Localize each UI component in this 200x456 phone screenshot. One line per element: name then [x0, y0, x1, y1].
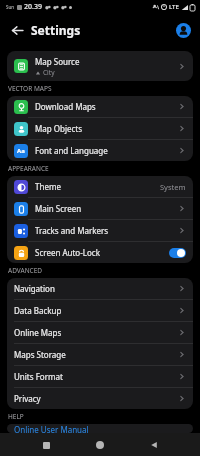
staticText: Font and Language	[35, 145, 108, 156]
button[interactable]: Privacy	[7, 388, 193, 409]
staticText: Online User Manual	[14, 424, 89, 433]
button[interactable]: Tracks and Markers	[7, 220, 193, 242]
button[interactable]: Recents	[36, 435, 56, 455]
button[interactable]: Map Objects	[7, 118, 193, 140]
staticText: Map Objects	[35, 123, 83, 134]
staticText: Navigation	[14, 283, 55, 294]
button[interactable]: Aa	[7, 140, 193, 161]
staticText: Online Maps	[14, 327, 62, 338]
staticText: Main Screen	[35, 203, 82, 214]
staticText: Settings	[31, 22, 81, 38]
staticText: System	[160, 182, 186, 192]
staticText: HELP	[8, 412, 24, 421]
staticText: Map Source	[35, 56, 80, 67]
staticText: Aa	[17, 147, 25, 155]
staticText: Download Maps	[35, 101, 96, 112]
button[interactable]: Download Maps	[7, 96, 193, 118]
staticText: Units Format	[14, 371, 63, 382]
button[interactable]: Online Maps	[7, 322, 193, 344]
staticText: 20.39	[24, 2, 42, 12]
button[interactable]: Screen Auto-Lock	[7, 242, 193, 263]
staticText: APPEARANCE	[8, 164, 49, 173]
button[interactable]: Back	[5, 18, 29, 42]
button[interactable]: Main Screen	[7, 198, 193, 220]
staticText: Theme	[35, 181, 61, 192]
staticText: Data Backup	[14, 305, 62, 316]
staticText: Privacy	[14, 393, 41, 404]
staticText: VECTOR MAPS	[8, 84, 52, 93]
staticText: Tracks and Markers	[35, 225, 109, 236]
button[interactable]: Theme	[7, 176, 193, 198]
button[interactable]: Online User Manual	[7, 424, 193, 433]
button[interactable]: Units Format	[7, 366, 193, 388]
staticText: Maps Storage	[14, 349, 66, 360]
button[interactable]: Maps Storage	[7, 344, 193, 366]
button[interactable]: Data Backup	[7, 300, 193, 322]
button[interactable]: Back	[144, 435, 164, 455]
staticText: Screen Auto-Lock	[35, 247, 100, 258]
staticText: City	[43, 68, 55, 77]
staticText: LTE	[169, 3, 179, 11]
button[interactable]: Navigation	[7, 278, 193, 300]
staticText: Sun	[6, 4, 15, 10]
button[interactable]: Home	[90, 435, 110, 455]
staticText: ADVANCED	[8, 266, 43, 275]
button[interactable]: Account	[172, 19, 194, 41]
button[interactable]: Map Source	[7, 51, 193, 81]
